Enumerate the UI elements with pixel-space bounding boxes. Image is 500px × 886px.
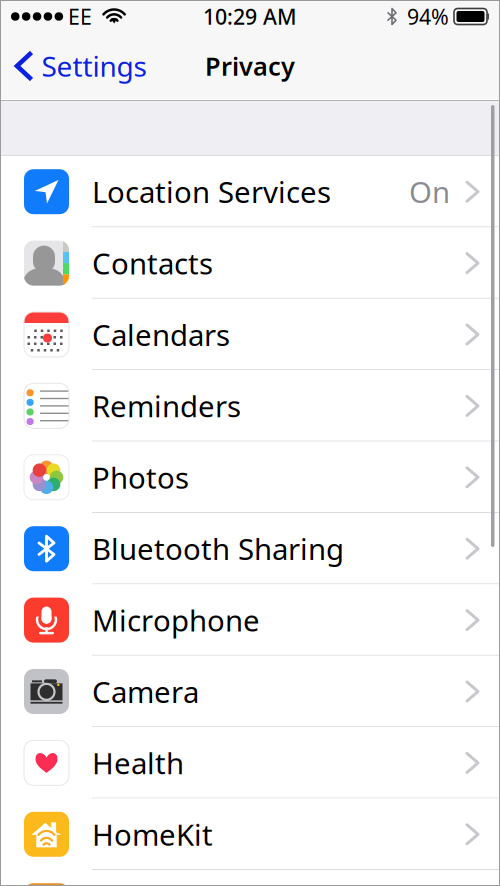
staticText: Reminders bbox=[92, 386, 241, 425]
staticText: Microphone bbox=[92, 601, 260, 640]
staticText: Health bbox=[92, 743, 184, 782]
button[interactable]: Photos bbox=[0, 442, 500, 513]
staticText: Privacy bbox=[205, 49, 295, 83]
button[interactable]: Reminders bbox=[0, 370, 500, 442]
staticText: HomeKit bbox=[92, 815, 213, 854]
button[interactable]: Health bbox=[0, 727, 500, 799]
staticText: EE bbox=[68, 2, 92, 31]
staticText: Bluetooth Sharing bbox=[92, 529, 344, 568]
staticText: On bbox=[409, 172, 450, 211]
staticText: Settings bbox=[41, 47, 146, 85]
button[interactable]: Motion & Fitness bbox=[0, 870, 500, 886]
button[interactable]: HomeKit bbox=[0, 799, 500, 870]
staticText: Location Services bbox=[92, 172, 331, 211]
staticText: 94% bbox=[407, 2, 449, 31]
button[interactable]: Settings bbox=[0, 47, 154, 85]
button[interactable]: Bluetooth Sharing bbox=[0, 513, 500, 584]
button[interactable]: Microphone bbox=[0, 584, 500, 656]
staticText: Calendars bbox=[92, 315, 230, 354]
staticText: Photos bbox=[92, 458, 189, 497]
button[interactable]: Camera bbox=[0, 656, 500, 727]
staticText: Camera bbox=[92, 672, 199, 711]
button[interactable]: Contacts bbox=[0, 227, 500, 299]
staticText: Contacts bbox=[92, 244, 213, 283]
button[interactable]: Calendars bbox=[0, 299, 500, 370]
staticText: 10:29 AM bbox=[203, 2, 297, 31]
button[interactable]: Location Services bbox=[0, 156, 500, 227]
